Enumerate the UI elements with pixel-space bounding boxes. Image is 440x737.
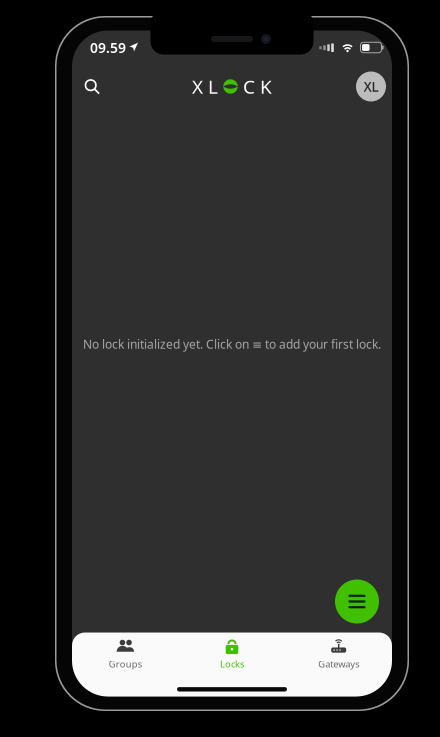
button[interactable]: Menu: [335, 579, 379, 623]
staticText: Groups: [109, 658, 142, 670]
staticText: Locks: [220, 658, 244, 670]
button[interactable]: Gateways: [285, 632, 392, 676]
staticText: XL: [363, 77, 378, 96]
staticText: Gateways: [318, 658, 359, 670]
staticText: K: [260, 74, 272, 99]
staticText: C: [243, 74, 255, 99]
staticText: X: [192, 74, 203, 99]
staticText: 09.59: [90, 38, 126, 57]
staticText: L: [208, 74, 218, 99]
staticText: No lock initialized yet. Click on ≡ to a…: [83, 336, 381, 352]
button[interactable]: Search: [73, 67, 111, 105]
button[interactable]: Groups: [72, 632, 179, 676]
button[interactable]: Profile: [353, 68, 389, 104]
button[interactable]: Locks: [179, 632, 285, 676]
